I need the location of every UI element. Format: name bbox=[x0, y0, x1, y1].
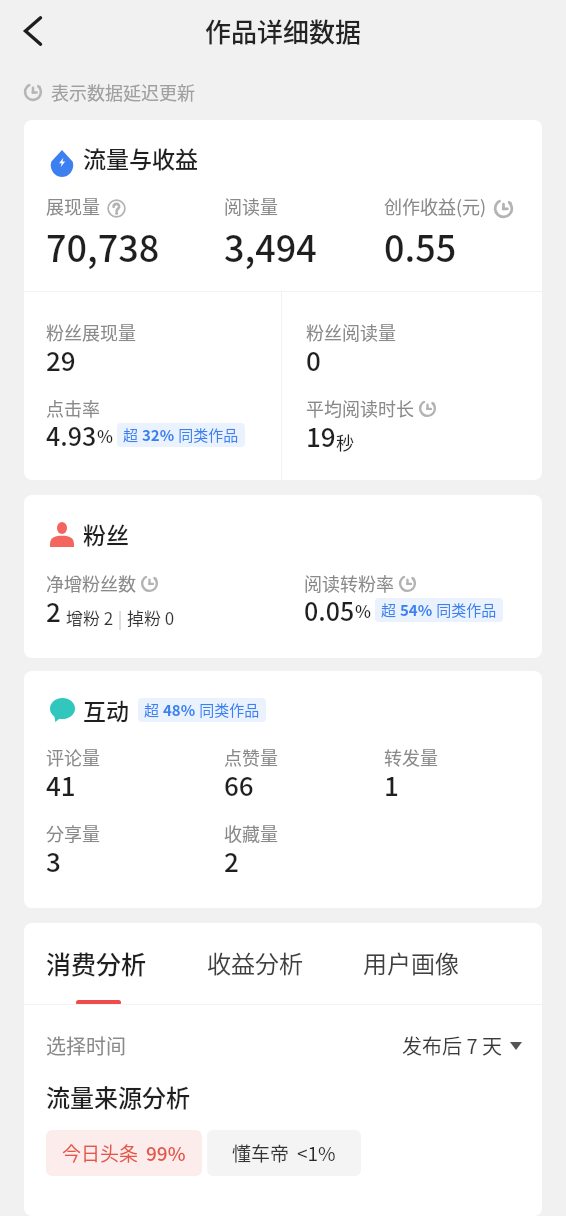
staticText: 转发量 bbox=[384, 744, 438, 770]
staticText: 同类作品 bbox=[196, 699, 260, 721]
staticText: 平均阅读时长 bbox=[306, 395, 414, 421]
staticText: 4.93 bbox=[46, 417, 97, 453]
button[interactable]: 收益分析 bbox=[207, 945, 303, 1004]
staticText: 展现量 bbox=[46, 193, 100, 219]
staticText: 41 bbox=[46, 766, 76, 804]
staticText: 0.05 bbox=[304, 592, 355, 628]
button[interactable]: Back bbox=[10, 8, 56, 54]
staticText: 粉丝展现量 bbox=[46, 319, 136, 345]
staticText: % bbox=[355, 598, 371, 623]
staticText: 消费分析 bbox=[46, 945, 147, 981]
staticText: 收藏量 bbox=[224, 820, 278, 846]
button[interactable]: 用户画像 bbox=[363, 945, 459, 1004]
staticText: 70,738 bbox=[46, 220, 160, 272]
staticText: 粉丝阅读量 bbox=[306, 319, 396, 345]
button[interactable]: 今日头条 bbox=[46, 1130, 202, 1176]
staticText: 选择时间 bbox=[46, 1031, 126, 1060]
staticText: | bbox=[114, 605, 127, 630]
staticText: 点赞量 bbox=[224, 744, 278, 770]
staticText: 阅读转粉率 bbox=[304, 570, 394, 596]
staticText: 1 bbox=[384, 766, 399, 804]
staticText: 0.55 bbox=[384, 220, 457, 272]
button[interactable]: 发布后 7 天 bbox=[402, 1031, 522, 1060]
staticText: 净增粉丝数 bbox=[46, 570, 136, 596]
staticText: 同类作品 bbox=[433, 599, 497, 621]
button[interactable]: 消费分析 bbox=[46, 945, 147, 1005]
staticText: 流量与收益 bbox=[83, 141, 198, 174]
staticText: 互动 bbox=[83, 693, 129, 726]
staticText: 流量来源分析 bbox=[46, 1079, 190, 1114]
staticText: 点击率 bbox=[46, 395, 100, 421]
staticText: 同类作品 bbox=[175, 424, 239, 446]
staticText: <1% bbox=[297, 1139, 336, 1167]
staticText: 秒 bbox=[336, 429, 354, 455]
staticText: 48% bbox=[163, 699, 196, 721]
staticText: 用户画像 bbox=[363, 945, 459, 980]
staticText: 66 bbox=[224, 766, 254, 804]
button[interactable]: 懂车帝 bbox=[207, 1130, 361, 1176]
staticText: 今日头条 bbox=[62, 1139, 139, 1167]
staticText: 超 bbox=[381, 599, 400, 621]
staticText: 作品详细数据 bbox=[205, 12, 362, 50]
staticText: 0 bbox=[306, 341, 321, 379]
staticText: 2 bbox=[46, 592, 61, 630]
staticText: 分享量 bbox=[46, 820, 100, 846]
staticText: 懂车帝 bbox=[232, 1139, 290, 1167]
staticText: 2 bbox=[224, 842, 239, 880]
staticText: 掉粉 0 bbox=[127, 605, 175, 630]
staticText: % bbox=[97, 423, 113, 448]
staticText: 3 bbox=[46, 842, 61, 880]
staticText: 阅读量 bbox=[224, 193, 278, 219]
staticText: 超 bbox=[144, 699, 163, 721]
staticText: 评论量 bbox=[46, 744, 100, 770]
staticText: 表示数据延迟更新 bbox=[51, 79, 195, 105]
staticText: 29 bbox=[46, 341, 76, 379]
staticText: 54% bbox=[400, 599, 433, 621]
staticText: 增粉 2 bbox=[66, 605, 114, 630]
staticText: 收益分析 bbox=[207, 945, 303, 980]
staticText: 创作收益(元) bbox=[384, 193, 487, 219]
staticText: 超 bbox=[123, 424, 142, 446]
staticText: 发布后 7 天 bbox=[402, 1031, 503, 1060]
staticText: 19 bbox=[306, 417, 336, 455]
staticText: 99% bbox=[146, 1139, 186, 1167]
staticText: 32% bbox=[142, 424, 175, 446]
staticText: 3,494 bbox=[224, 220, 317, 272]
staticText: 粉丝 bbox=[83, 517, 129, 550]
